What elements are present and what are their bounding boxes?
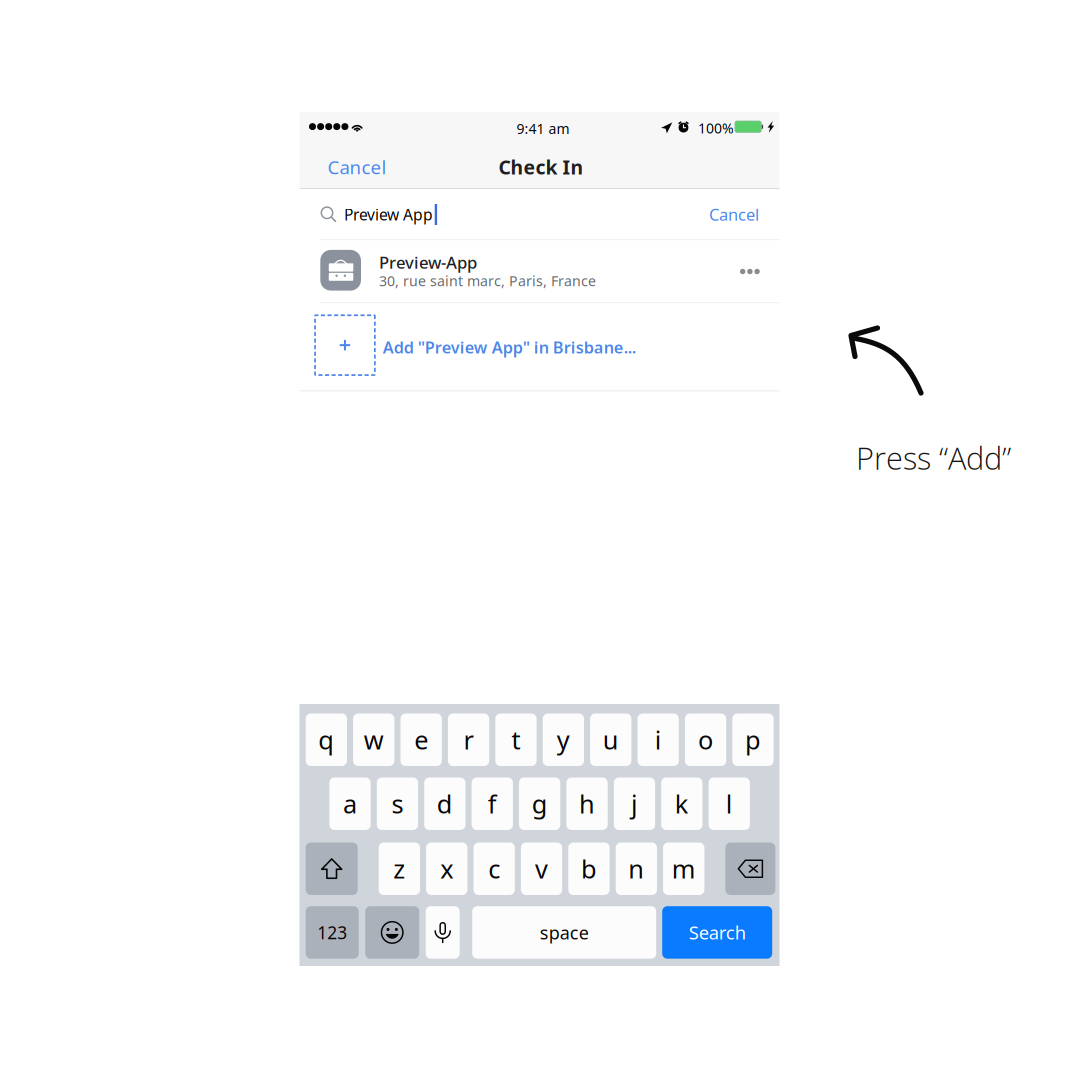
staticText: Press “Add” [856,437,1011,479]
staticText: p [745,722,761,757]
staticText: Add "Preview App" in Brisbane... [383,336,636,358]
button[interactable]: Cancel [299,189,371,240]
button[interactable]: Delete [725,842,775,895]
button[interactable]: k [661,777,702,830]
staticText: y [557,722,570,757]
staticText: Cancel [709,203,759,226]
staticText: Preview App [344,204,433,225]
staticText: q [318,722,334,757]
button[interactable]: w [353,713,394,766]
staticText: a [343,786,357,821]
button[interactable]: i [637,713,679,766]
staticText: o [698,722,713,757]
button[interactable]: b [568,842,610,895]
staticText: 100% [698,118,734,138]
staticText: c [488,851,500,886]
button[interactable]: n [616,842,657,895]
staticText: 30, rue saint marc, Paris, France [379,271,596,290]
button[interactable]: c [473,842,515,895]
staticText: 123 [317,921,347,944]
button[interactable]: l [709,777,750,830]
button[interactable]: p [732,713,774,766]
button[interactable]: r [448,713,489,766]
button[interactable]: t [495,713,537,766]
button[interactable]: Dictate [426,906,460,959]
button[interactable]: m [663,842,704,895]
button[interactable]: j [614,777,655,830]
button[interactable]: u [590,713,631,766]
button[interactable]: s [377,777,418,830]
staticText: Cancel [327,154,386,180]
staticText: Preview-App [379,251,477,274]
button[interactable]: y [543,713,584,766]
button[interactable]: a [329,777,371,830]
staticText: 9:41 am [516,119,569,138]
button[interactable]: g [519,777,560,830]
staticText: Check In [498,154,583,180]
button[interactable]: q [306,713,347,766]
staticText: r [463,722,473,757]
button[interactable]: x [426,842,467,895]
staticText: v [535,851,548,886]
staticText: j [631,786,638,821]
staticText: m [672,851,696,886]
button[interactable]: space [472,906,656,959]
staticText: z [393,851,405,886]
button[interactable]: Shift [306,842,358,895]
staticText: f [488,786,497,821]
button[interactable]: 123 [306,906,359,959]
staticText: x [440,851,453,886]
staticText: space [540,920,589,945]
staticText: k [675,786,689,821]
staticText: g [532,786,548,821]
staticText: b [581,851,597,886]
staticText: t [511,722,520,757]
staticText: e [414,722,428,757]
button[interactable]: Preview-App [299,240,779,303]
staticText: h [579,786,595,821]
staticText: w [364,722,384,757]
staticText: u [603,722,619,757]
staticText: n [628,851,644,886]
staticText: d [437,786,453,821]
button[interactable]: Emoji [365,906,419,959]
button[interactable]: Search [662,906,772,959]
staticText: l [726,786,733,821]
button[interactable]: h [566,777,608,830]
button[interactable]: f [472,777,513,830]
button[interactable]: Cancel [299,145,373,189]
button[interactable]: z [379,842,420,895]
staticText: i [655,722,662,757]
button[interactable]: v [521,842,562,895]
button[interactable]: e [400,713,442,766]
button[interactable]: o [685,713,726,766]
staticText: s [391,786,403,821]
button[interactable]: d [424,777,465,830]
staticText: Search [689,920,746,945]
button[interactable]: Add "Preview App" in Brisbane... [299,303,779,391]
